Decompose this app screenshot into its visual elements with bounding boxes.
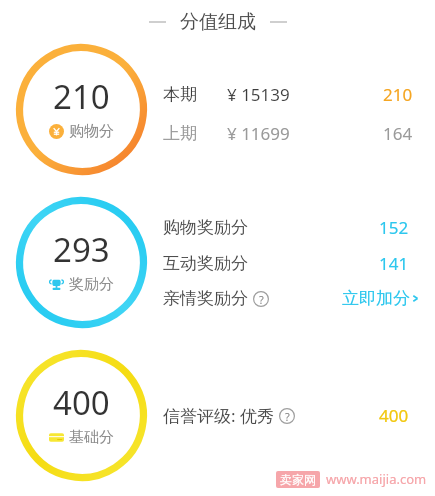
staticText: ¥ 11699 [227,122,290,145]
staticText: 400 [379,404,409,427]
staticText: ? [285,409,290,424]
staticText: 141 [379,252,409,275]
staticText: 210 [53,74,110,119]
other: 帮助 [279,408,295,424]
staticText: 奖励分 [69,275,114,294]
staticText: 购物奖励分 [163,217,248,238]
staticText: 信誉评级: 优秀 [163,404,274,427]
staticText: ¥ 15139 [227,83,290,106]
staticText: 本期 [163,84,197,105]
staticText: 分值组成 [180,10,256,34]
staticText: 亲情奖励分 [163,288,248,309]
button[interactable]: 上期 [163,122,421,145]
button[interactable]: 立即加分 [342,288,421,309]
staticText: 立即加分 [342,288,410,309]
button[interactable]: 互动奖励分 [163,252,421,275]
button[interactable]: 信誉评级: 优秀 [163,404,421,427]
staticText: ? [259,292,264,307]
staticText: 购物分 [69,122,114,141]
staticText: 400 [53,380,110,425]
staticText: 互动奖励分 [163,253,248,274]
other: 帮助 [253,291,269,307]
staticText: 164 [383,122,413,145]
staticText: www.maijia.com [326,470,427,488]
staticText: 基础分 [69,428,114,447]
button[interactable]: 亲情奖励分 [163,288,269,309]
button[interactable]: 本期 [163,83,421,106]
staticText: 210 [383,83,413,106]
staticText: 293 [53,227,110,272]
button[interactable]: 购物奖励分 [163,216,421,239]
staticText: 上期 [163,123,197,144]
staticText: 152 [379,216,409,239]
staticText: 卖家网 [280,472,316,487]
